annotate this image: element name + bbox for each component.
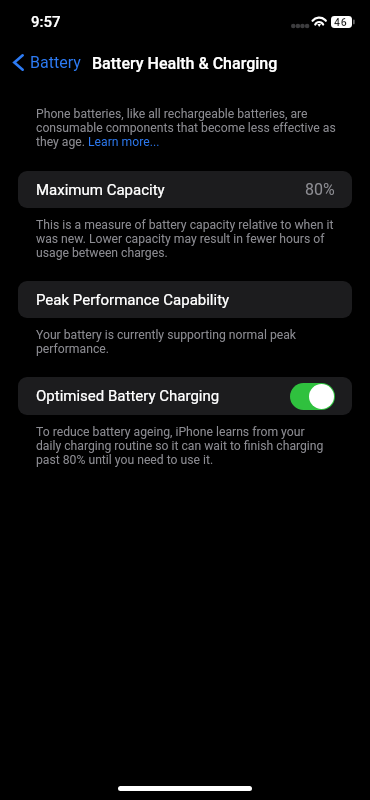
staticText: 46 xyxy=(334,16,348,28)
button[interactable]: Optimised Battery Charging toggle xyxy=(290,383,335,410)
staticText: Battery Health & Charging xyxy=(92,54,278,73)
staticText: Phone batteries, like all rechargeable b… xyxy=(36,107,336,149)
button[interactable]: Back to Battery xyxy=(6,50,87,75)
staticText: Peak Performance Capability xyxy=(36,291,230,309)
staticText: Your battery is currently supporting nor… xyxy=(36,328,296,356)
staticText: To reduce battery ageing, iPhone learns … xyxy=(36,425,324,467)
staticText: 9:57 xyxy=(31,13,61,31)
staticText: 80% xyxy=(305,180,335,199)
staticText: Battery xyxy=(30,53,81,72)
staticText: This is a measure of battery capacity re… xyxy=(36,218,334,260)
button[interactable]: Peak Performance Capability xyxy=(18,281,352,318)
button[interactable]: Optimised Battery Charging xyxy=(18,377,352,415)
staticText: Optimised Battery Charging xyxy=(36,387,220,405)
staticText: Maximum Capacity xyxy=(36,181,165,199)
button[interactable]: Maximum Capacity xyxy=(18,171,352,208)
